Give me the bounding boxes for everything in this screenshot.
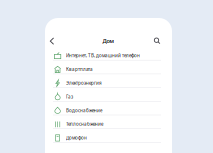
staticText: Водоснабжение bbox=[66, 107, 102, 113]
button[interactable]: Теплоснабжение bbox=[45, 115, 172, 129]
button[interactable]: Back bbox=[45, 35, 58, 47]
staticText: Интернет, ТВ, домашний телефон bbox=[66, 52, 140, 59]
button[interactable]: Домофон bbox=[45, 129, 172, 143]
staticText: Домофон bbox=[66, 135, 87, 141]
button[interactable]: Квартплата bbox=[45, 60, 172, 74]
staticText: Газ bbox=[66, 94, 73, 100]
button[interactable]: Интернет, ТВ, домашний телефон bbox=[45, 47, 172, 60]
button[interactable]: Водоснабжение bbox=[45, 102, 172, 115]
staticText: Теплоснабжение bbox=[66, 121, 103, 127]
staticText: Электроэнергия bbox=[66, 80, 102, 86]
staticText: Квартплата bbox=[66, 66, 93, 72]
button[interactable]: Электроэнергия bbox=[45, 74, 172, 88]
button[interactable]: Газ bbox=[45, 88, 172, 102]
staticText: Дом bbox=[102, 37, 114, 45]
button[interactable]: Search bbox=[151, 35, 172, 47]
